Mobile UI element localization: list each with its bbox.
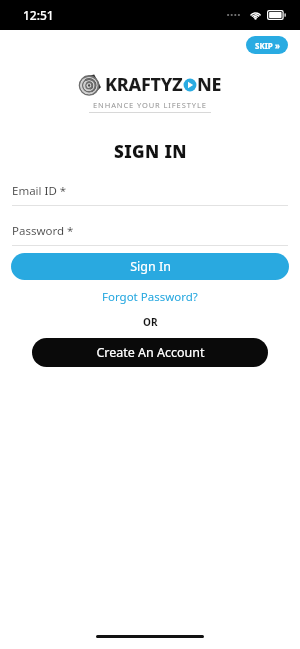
staticText: SIGN IN — [114, 140, 187, 163]
staticText: » — [275, 40, 280, 51]
button[interactable]: Create An Account — [32, 338, 268, 367]
button[interactable]: Sign In — [11, 253, 289, 280]
button[interactable]: SKIP — [246, 36, 288, 54]
button[interactable]: Password * — [12, 223, 288, 239]
staticText: Sign In — [130, 258, 171, 275]
button[interactable]: Email ID * — [12, 183, 288, 199]
staticText: Create An Account — [96, 344, 205, 361]
staticText: 12:51 — [23, 7, 54, 23]
staticText: Forgot Password? — [102, 289, 198, 305]
staticText: Password * — [12, 223, 74, 239]
staticText: ENHANCE YOUR LIFESTYLE — [93, 100, 207, 110]
staticText: KRAFTYZ — [105, 72, 183, 97]
staticText: SKIP — [255, 40, 273, 51]
staticText: NE — [197, 72, 222, 97]
button[interactable]: Forgot Password? — [98, 288, 202, 306]
staticText: OR — [143, 315, 158, 329]
staticText: Email ID * — [12, 183, 67, 199]
